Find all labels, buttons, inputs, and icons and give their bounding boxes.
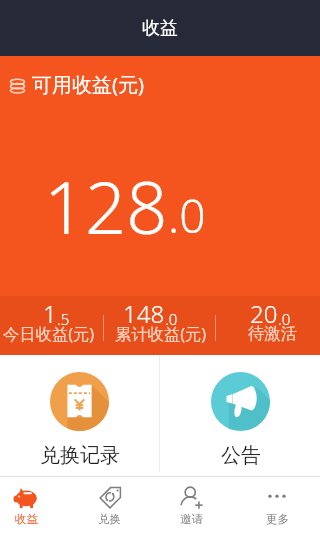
staticText: 1 xyxy=(43,297,57,330)
staticText: 今日收益(元) xyxy=(3,323,95,345)
staticText: 收益 xyxy=(15,512,38,526)
button[interactable]: 148 xyxy=(103,296,215,355)
staticText: 兑换记录 xyxy=(40,443,120,468)
other: 更多 xyxy=(264,485,290,511)
staticText: 兑换 xyxy=(98,512,121,526)
other: 兑换 xyxy=(97,485,123,511)
staticText: .0 xyxy=(165,309,178,329)
staticText: 累计收益(元) xyxy=(115,323,207,345)
other: 收益 xyxy=(13,485,39,511)
button[interactable]: 20 xyxy=(215,296,320,355)
button[interactable]: 兑换记录 xyxy=(0,355,159,476)
staticText: 更多 xyxy=(266,512,289,526)
button[interactable]: 兑换 xyxy=(83,477,136,533)
staticText: 邀请 xyxy=(180,512,203,526)
staticText: 128 xyxy=(44,157,168,255)
button[interactable]: 邀请 xyxy=(165,477,217,533)
staticText: 可用收益(元) xyxy=(32,71,144,98)
staticText: .5 xyxy=(57,309,70,329)
staticText: 148 xyxy=(123,297,165,330)
button[interactable]: 1 xyxy=(0,296,103,355)
staticText: 20 xyxy=(250,297,278,330)
button[interactable]: 收益 xyxy=(0,0,320,56)
button[interactable]: 收益 xyxy=(0,477,52,533)
staticText: 收益 xyxy=(142,17,178,40)
button[interactable]: 更多 xyxy=(251,477,303,533)
button[interactable]: 公告 xyxy=(161,355,320,476)
staticText: 待激活 xyxy=(248,323,297,344)
other: 邀请 xyxy=(178,485,204,511)
staticText: 公告 xyxy=(221,443,261,468)
staticText: .0 xyxy=(168,184,206,247)
staticText: .0 xyxy=(278,309,291,329)
